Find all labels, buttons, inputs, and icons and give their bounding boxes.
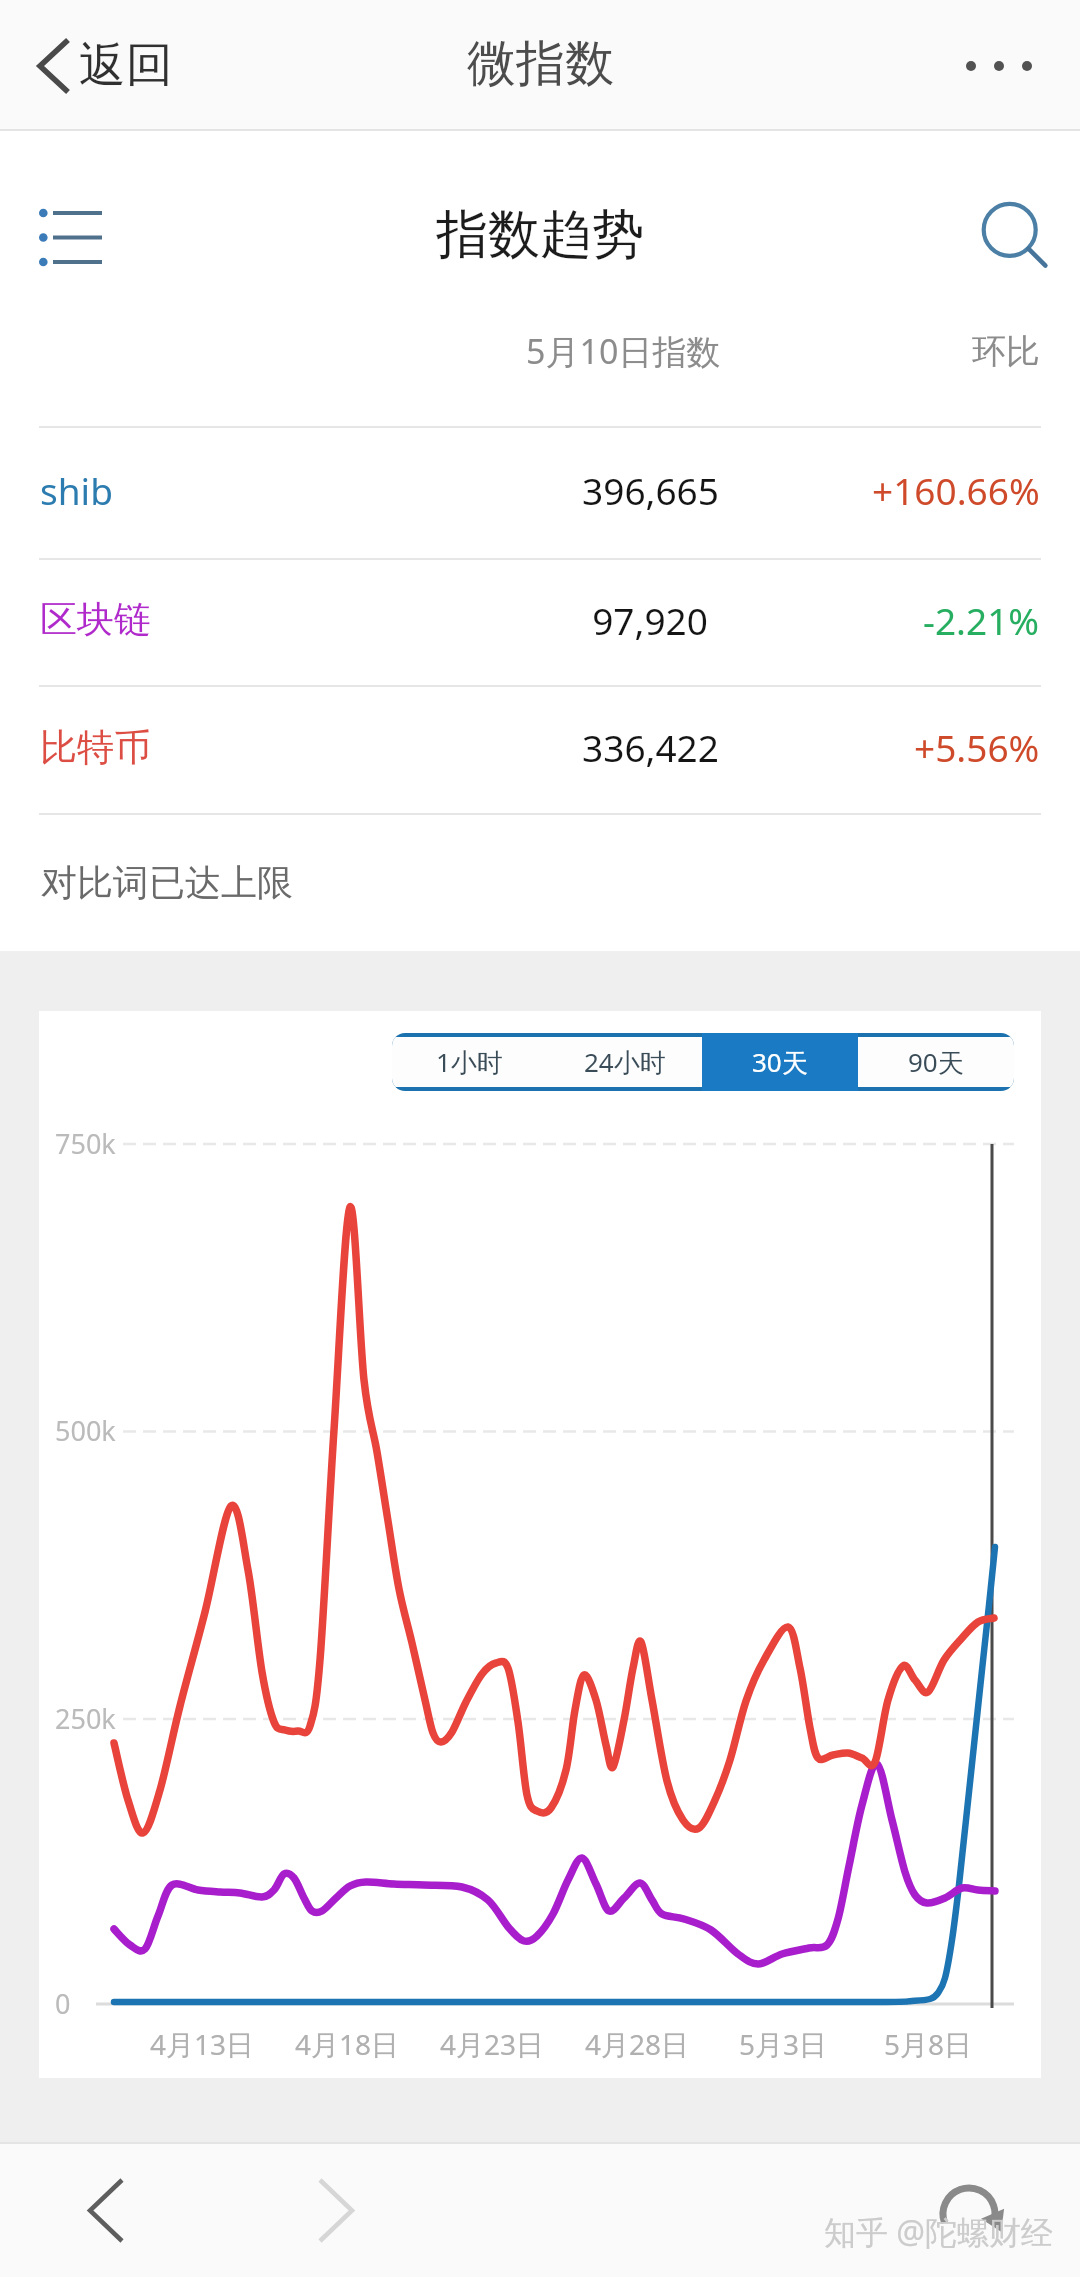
staticText: 环比 — [972, 330, 1040, 373]
staticText: 250k — [55, 1700, 116, 1737]
staticText: 知乎 @陀螺财经 — [824, 2210, 1054, 2254]
staticText: 24小时 — [584, 1044, 666, 1080]
staticText: 4月28日 — [585, 2025, 690, 2063]
staticText: 4月23日 — [440, 2025, 545, 2063]
button[interactable]: 比特币 — [0, 685, 1080, 813]
staticText: +5.56% — [914, 722, 1040, 772]
staticText: 30天 — [752, 1044, 808, 1080]
button[interactable]: Refresh — [914, 2155, 1024, 2265]
staticText: 1小时 — [436, 1044, 503, 1080]
button[interactable]: Forward — [281, 2155, 391, 2265]
staticText: 指数趋势 — [436, 202, 644, 268]
staticText: 4月13日 — [150, 2025, 255, 2063]
staticText: 5月10日指数 — [526, 328, 721, 374]
staticText: 336,422 — [582, 722, 719, 772]
staticText: 微指数 — [467, 33, 614, 95]
button[interactable]: Back — [0, 0, 197, 131]
button[interactable]: Back — [51, 2155, 161, 2265]
button[interactable]: 区块链 — [0, 558, 1080, 685]
staticText: -2.21% — [923, 595, 1040, 645]
staticText: 0 — [55, 1985, 71, 2022]
button[interactable]: Search — [954, 175, 1074, 295]
staticText: 比特币 — [40, 724, 151, 771]
staticText: 750k — [55, 1125, 116, 1162]
staticText: +160.66% — [872, 465, 1040, 515]
staticText: 4月18日 — [295, 2025, 400, 2063]
staticText: shib — [40, 465, 113, 515]
staticText: 97,920 — [592, 595, 708, 645]
staticText: 396,665 — [582, 465, 719, 515]
staticText: 5月3日 — [739, 2025, 828, 2063]
button[interactable]: shib — [0, 426, 1080, 558]
staticText: 返回 — [79, 36, 173, 95]
button[interactable]: 90天 — [858, 1037, 1014, 1087]
staticText: 90天 — [908, 1044, 964, 1080]
button[interactable]: 30天 — [702, 1033, 858, 1091]
staticText: 5月8日 — [884, 2025, 973, 2063]
staticText: 500k — [55, 1412, 116, 1449]
staticText: 区块链 — [40, 596, 151, 643]
button[interactable]: Word list — [10, 170, 130, 300]
button[interactable]: 1小时 — [392, 1037, 547, 1087]
button[interactable]: More options — [942, 0, 1080, 131]
button[interactable]: 24小时 — [547, 1037, 702, 1087]
staticText: 对比词已达上限 — [41, 860, 293, 905]
